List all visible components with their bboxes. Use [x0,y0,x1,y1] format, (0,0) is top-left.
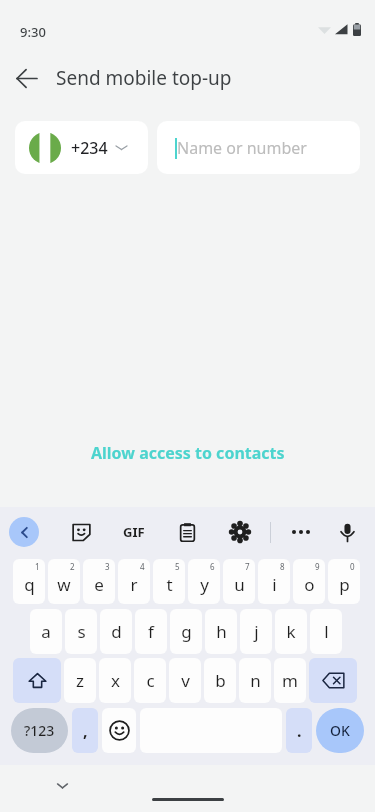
button[interactable]: Backspace [309,658,357,703]
button[interactable]: Stickers [65,516,97,548]
button[interactable]: Voice input [331,516,363,548]
staticText: j [254,620,259,643]
staticText: u [234,573,245,596]
button[interactable]: k [275,609,307,654]
staticText: z [76,669,84,692]
staticText: 6 [210,561,215,572]
button[interactable]: Settings [224,516,256,548]
button[interactable]: d [100,609,132,654]
staticText: a [41,620,51,643]
staticText: i [272,573,277,596]
button[interactable]: 7 [223,559,255,604]
button[interactable]: Back [0,52,52,104]
staticText: 3 [105,561,110,572]
staticText: m [282,669,298,692]
button[interactable]: a [30,609,62,654]
staticText: 1 [35,561,40,572]
staticText: y [200,573,209,596]
button[interactable]: l [310,609,342,654]
button[interactable]: 6 [188,559,220,604]
button[interactable]: Allow access to contacts [79,436,297,470]
button[interactable]: Previous [9,517,39,547]
staticText: , [83,720,88,742]
button[interactable]: . [286,708,312,753]
staticText: Allow access to contacts [91,442,285,464]
button[interactable]: x [99,658,131,703]
staticText: x [111,669,120,692]
staticText: . [297,720,302,742]
staticText: +234 [71,137,108,159]
staticText: l [324,620,329,643]
button[interactable]: Emoji [102,708,136,753]
button[interactable]: n [239,658,271,703]
button[interactable]: v [169,658,201,703]
staticText: h [216,620,227,643]
button[interactable]: 3 [83,559,115,604]
button[interactable]: ?123 [11,708,68,753]
staticText: 7 [245,561,250,572]
staticText: b [215,669,226,692]
staticText: f [148,620,154,643]
button[interactable]: 8 [258,559,290,604]
button[interactable]: +234 [15,121,148,174]
staticText: t [166,573,173,596]
staticText: OK [330,721,350,740]
button[interactable]: , [72,708,98,753]
staticText: v [181,669,190,692]
staticText: n [250,669,261,692]
button[interactable]: 2 [48,559,80,604]
staticText: p [339,573,350,596]
button[interactable]: z [64,658,96,703]
button[interactable]: OK [316,708,364,753]
staticText: GIF [123,523,145,541]
button[interactable]: 0 [328,559,360,604]
button[interactable]: f [135,609,167,654]
staticText: 8 [280,561,285,572]
button[interactable]: g [170,609,202,654]
button[interactable]: 4 [118,559,150,604]
staticText: 0 [350,561,355,572]
staticText: d [111,620,122,643]
button[interactable]: b [204,658,236,703]
button[interactable]: Shift [13,658,61,703]
staticText: Name or number [177,137,307,159]
button[interactable]: Hide keyboard [50,773,74,797]
button[interactable]: s [65,609,97,654]
staticText: o [304,573,315,596]
button[interactable]: 1 [13,559,45,604]
staticText: c [146,669,155,692]
button[interactable]: 5 [153,559,185,604]
button[interactable]: More options [285,516,317,548]
staticText: ?123 [24,721,55,740]
staticText: q [24,573,35,596]
button[interactable]: h [205,609,237,654]
staticText: r [130,573,138,596]
staticText: s [77,620,86,643]
button[interactable]: Clipboard [171,516,203,548]
staticText: 5 [175,561,180,572]
staticText: 2 [70,561,75,572]
button[interactable]: GIF [118,516,150,548]
button[interactable]: 9 [293,559,325,604]
button[interactable]: c [134,658,166,703]
staticText: g [181,620,192,643]
button[interactable]: Name or number [157,121,360,174]
button[interactable]: m [274,658,306,703]
staticText: 9 [315,561,320,572]
staticText: Send mobile top-up [56,65,232,91]
staticText: w [57,573,71,596]
staticText: e [94,573,104,596]
staticText: 4 [140,561,145,572]
staticText: k [286,620,296,643]
button[interactable]: j [240,609,272,654]
staticText: 9:30 [20,23,46,41]
